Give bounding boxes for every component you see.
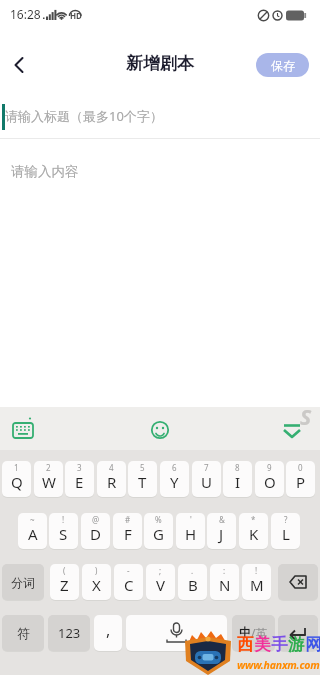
staticText: M [250, 575, 264, 595]
button[interactable] [4, 50, 36, 80]
staticText: 游 [288, 634, 305, 655]
button[interactable]: 1 [2, 461, 31, 497]
staticText: ; [159, 565, 162, 576]
button[interactable]: & [207, 513, 236, 549]
staticText: Z [60, 575, 69, 595]
button[interactable]: , [94, 615, 122, 651]
button[interactable]: ? [271, 513, 300, 549]
staticText: # [125, 514, 131, 525]
button[interactable]: # [113, 513, 142, 549]
staticText: - [127, 565, 130, 576]
button[interactable]: 7 [192, 461, 221, 497]
staticText: S [59, 524, 68, 544]
staticText: ' [190, 514, 192, 525]
button[interactable]: @ [81, 513, 110, 549]
staticText: 7 [204, 462, 209, 473]
staticText: 8 [235, 462, 240, 473]
staticText: 请输入内容 [11, 163, 79, 180]
staticText: ~ [30, 514, 35, 525]
staticText: ! [255, 565, 258, 576]
staticText: 9 [267, 462, 272, 473]
button[interactable]: 123 [48, 615, 90, 651]
button[interactable]: - [114, 564, 143, 600]
button[interactable] [276, 416, 310, 444]
staticText: T [138, 472, 147, 492]
staticText: 5 [140, 462, 145, 473]
staticText: B [188, 575, 198, 595]
staticText: S [300, 403, 312, 432]
staticText: C [124, 575, 134, 595]
button[interactable]: 请输入内容 [0, 145, 320, 395]
button[interactable] [278, 564, 318, 600]
button[interactable]: 9 [255, 461, 284, 497]
button[interactable]: ) [82, 564, 111, 600]
button[interactable]: 保存 [256, 53, 309, 77]
button[interactable]: : [210, 564, 239, 600]
staticText: 16:28 [10, 6, 41, 22]
staticText: , [106, 619, 111, 641]
button[interactable]: 中 [232, 615, 275, 651]
staticText: @ [92, 514, 100, 525]
staticText: F [124, 524, 132, 544]
staticText: . [191, 565, 194, 576]
button[interactable]: 2 [34, 461, 63, 497]
button[interactable]: ' [176, 513, 205, 549]
staticText: 美 [254, 634, 271, 655]
staticText: 保存 [271, 58, 295, 73]
button[interactable]: * [239, 513, 268, 549]
button[interactable]: ( [50, 564, 79, 600]
staticText: 请输入标题（最多10个字） [5, 107, 163, 125]
button[interactable]: 0 [286, 461, 315, 497]
staticText: L [282, 524, 290, 544]
staticText: ! [62, 514, 65, 525]
staticText: O [264, 472, 276, 492]
button[interactable]: . [178, 564, 207, 600]
button[interactable]: 5 [128, 461, 157, 497]
button[interactable]: 3 [65, 461, 94, 497]
staticText: : [223, 565, 226, 576]
staticText: 4 [109, 462, 114, 473]
button[interactable] [278, 615, 318, 651]
staticText: Q [11, 472, 23, 492]
staticText: A [28, 524, 38, 544]
staticText: 中 [239, 625, 251, 640]
button[interactable]: 8 [223, 461, 252, 497]
staticText: /英 [251, 625, 268, 641]
button[interactable]: ! [49, 513, 78, 549]
staticText: N [219, 575, 231, 595]
staticText: % [155, 514, 162, 525]
button[interactable]: 分词 [2, 564, 44, 600]
staticText: & [219, 514, 225, 525]
button[interactable]: ; [146, 564, 175, 600]
staticText: J [219, 524, 224, 544]
staticText: P [296, 472, 306, 492]
button[interactable]: ~ [18, 513, 47, 549]
staticText: ? [284, 514, 288, 525]
button[interactable] [6, 416, 40, 444]
staticText: U [201, 472, 212, 492]
staticText: 6 [172, 462, 177, 473]
staticText: D [90, 524, 101, 544]
staticText: * [251, 514, 256, 525]
button[interactable]: 6 [160, 461, 189, 497]
button[interactable]: ! [242, 564, 271, 600]
staticText: 手 [271, 634, 288, 655]
button[interactable]: 请输入标题（最多10个字） [0, 96, 320, 138]
staticText: G [153, 524, 164, 544]
button[interactable] [144, 416, 176, 444]
staticText: 分词 [11, 575, 35, 590]
button[interactable]: 符 [2, 615, 44, 651]
staticText: R [107, 472, 117, 492]
staticText: Y [170, 472, 179, 492]
staticText: 2 [46, 462, 51, 473]
button[interactable] [126, 615, 227, 651]
staticText: X [92, 575, 101, 595]
staticText: HD [70, 10, 82, 21]
button[interactable]: 4 [97, 461, 126, 497]
staticText: ) [95, 565, 98, 576]
staticText: 3 [77, 462, 82, 473]
button[interactable]: % [144, 513, 173, 549]
staticText: 符 [17, 625, 30, 641]
staticText: K [249, 524, 259, 544]
staticText: 网 [305, 634, 320, 655]
